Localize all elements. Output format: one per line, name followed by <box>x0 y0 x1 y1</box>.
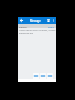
staticText: adipiscing elit <box>19 32 34 35</box>
button[interactable]: Forward <box>47 73 53 79</box>
button[interactable]: Back <box>18 17 24 24</box>
button[interactable]: Details <box>18 24 56 28</box>
staticText: Message <box>30 19 41 22</box>
staticText: Reply <box>48 25 55 28</box>
staticText: Lorem ipsum dolor sit amet, consec <box>19 29 56 32</box>
button[interactable]: Archive <box>46 17 51 24</box>
button[interactable]: Reply all <box>40 73 46 79</box>
staticText: Details <box>19 25 27 28</box>
button[interactable]: More options <box>51 17 56 24</box>
button[interactable]: Reply <box>33 73 39 79</box>
